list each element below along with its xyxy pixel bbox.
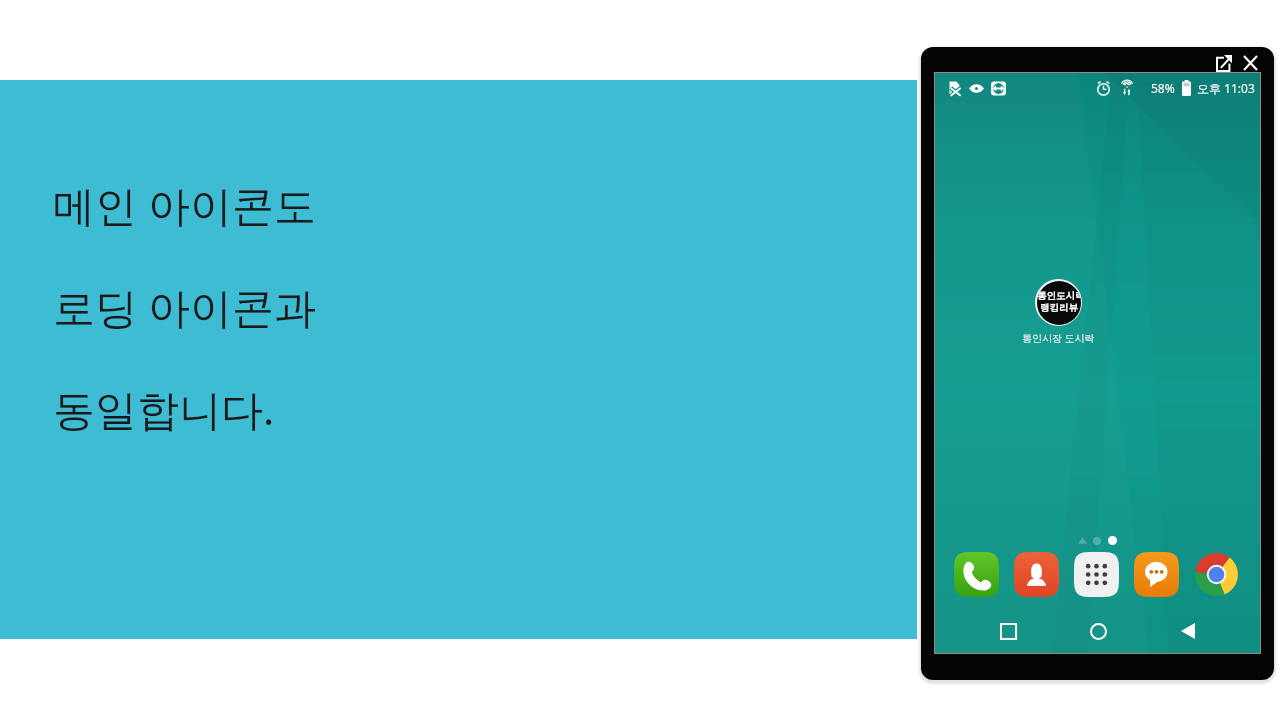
button[interactable]: Open in new window (1212, 51, 1236, 75)
staticText: 통인시장 도시락 (1022, 331, 1095, 345)
staticText: 메인 아이콘도 (53, 176, 316, 233)
button[interactable]: Close (1238, 51, 1262, 75)
staticText: 로딩 아이콘과 (53, 278, 316, 335)
button[interactable]: Contacts (1014, 552, 1059, 597)
button[interactable]: Phone (954, 552, 999, 597)
button[interactable]: Home (1075, 608, 1121, 654)
button[interactable]: Apps (1074, 552, 1119, 597)
button[interactable]: Messages (1134, 552, 1179, 597)
button[interactable]: Back (1165, 608, 1211, 654)
staticText: 랭킹리뷰 (1040, 302, 1078, 314)
button[interactable]: 통인시장 도시락 (1035, 279, 1082, 326)
button[interactable]: Recents (985, 608, 1031, 654)
button[interactable]: Home screen pages (1078, 536, 1117, 545)
staticText: 58% (1151, 80, 1175, 96)
button[interactable]: Chrome (1194, 552, 1239, 597)
staticText: 통인도시락 (1037, 290, 1081, 302)
staticText: 오후 11:03 (1197, 80, 1255, 96)
staticText: 동일합니다. (53, 380, 275, 437)
